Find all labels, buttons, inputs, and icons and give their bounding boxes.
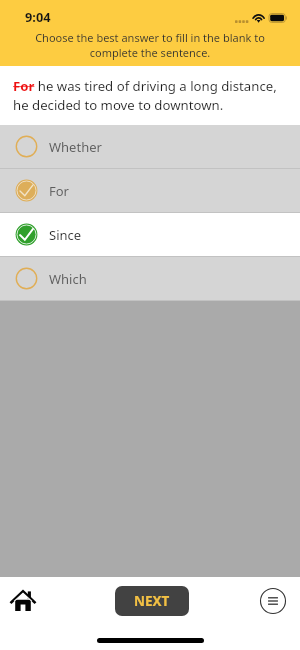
button[interactable]: NEXT <box>115 586 189 616</box>
button[interactable]: For <box>0 169 300 212</box>
staticText: Since <box>49 226 82 244</box>
staticText: 9:04 <box>25 8 51 25</box>
button[interactable]: Which <box>0 257 300 300</box>
button[interactable]: Menu <box>256 584 290 618</box>
staticText: For <box>49 182 69 200</box>
staticText: Which <box>49 270 87 288</box>
button[interactable]: Home <box>0 584 45 618</box>
staticText: For he was tired of driving a long dista… <box>13 77 290 113</box>
staticText: NEXT <box>134 592 170 610</box>
button[interactable]: Since <box>0 213 300 256</box>
staticText: Whether <box>49 138 102 156</box>
button[interactable]: Whether <box>0 125 300 168</box>
staticText: Choose the best answer to fill in the bl… <box>24 30 276 60</box>
